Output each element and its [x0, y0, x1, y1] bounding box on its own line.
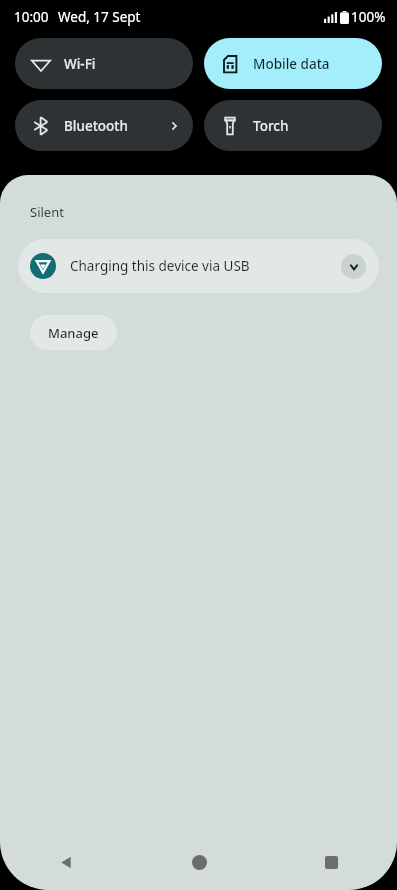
staticText: Bluetooth [64, 117, 128, 135]
staticText: Manage [48, 324, 99, 342]
staticText: Silent [30, 203, 64, 221]
button[interactable]: Recent apps [265, 834, 397, 890]
staticText: Wi-Fi [64, 55, 96, 73]
staticText: Mobile data [253, 55, 330, 73]
button[interactable]: Manage [30, 315, 117, 350]
button[interactable]: Bluetooth [15, 100, 193, 151]
button[interactable]: Expand notification [341, 254, 366, 279]
button[interactable]: Home [133, 834, 265, 890]
staticText: Torch [253, 117, 289, 135]
staticText: Charging this device via USB [70, 257, 250, 275]
button[interactable]: Charging this device via USB [18, 239, 379, 293]
button[interactable]: Wi-Fi [15, 38, 193, 89]
button[interactable]: Torch [204, 100, 382, 151]
staticText: 100% [351, 8, 386, 26]
button[interactable]: Mobile data [204, 38, 382, 89]
staticText: 10:00 [14, 8, 49, 26]
staticText: Wed, 17 Sept [58, 8, 141, 26]
button[interactable]: Back [0, 834, 133, 890]
